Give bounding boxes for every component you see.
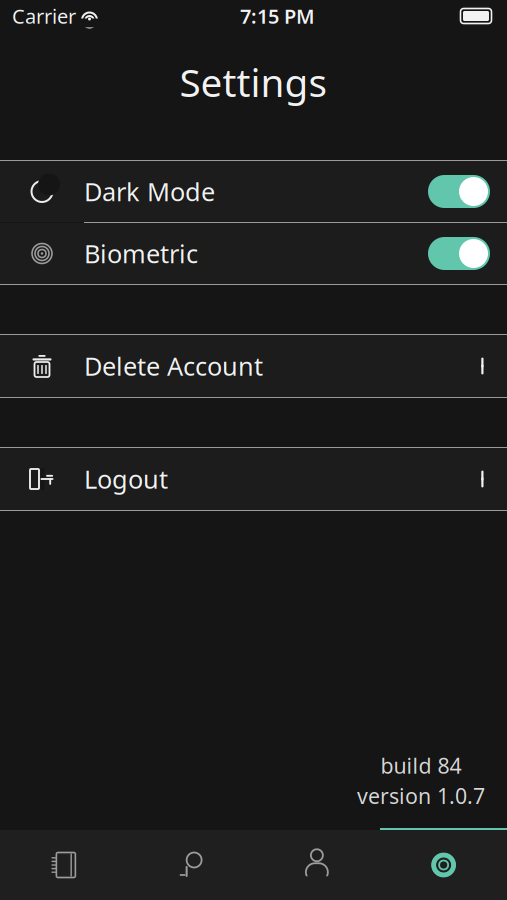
staticText: version 1.0.7	[357, 782, 485, 810]
button[interactable]: Notes	[0, 830, 127, 900]
staticText: Biometric	[84, 237, 198, 270]
button[interactable]: Settings	[380, 830, 507, 900]
button[interactable]: Dark Mode	[0, 161, 507, 223]
button[interactable]: Logout	[0, 448, 507, 510]
staticText: 7:15 PM	[240, 3, 315, 29]
button[interactable]: Biometric	[0, 223, 507, 284]
staticText: build 84	[380, 751, 461, 780]
button[interactable]: Search	[127, 830, 254, 900]
staticText: Dark Mode	[84, 175, 215, 208]
staticText: Settings	[179, 56, 327, 108]
staticText: Delete Account	[84, 349, 263, 383]
button[interactable]: Delete Account	[0, 335, 507, 397]
button[interactable]: Profile	[253, 830, 380, 900]
staticText: Carrier	[12, 3, 76, 29]
staticText: Logout	[84, 462, 168, 496]
